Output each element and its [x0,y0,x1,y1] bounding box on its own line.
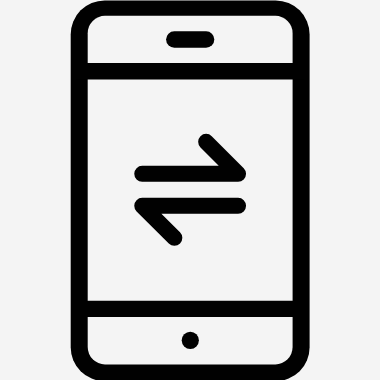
button[interactable]: Transfer data between devices [0,0,380,380]
